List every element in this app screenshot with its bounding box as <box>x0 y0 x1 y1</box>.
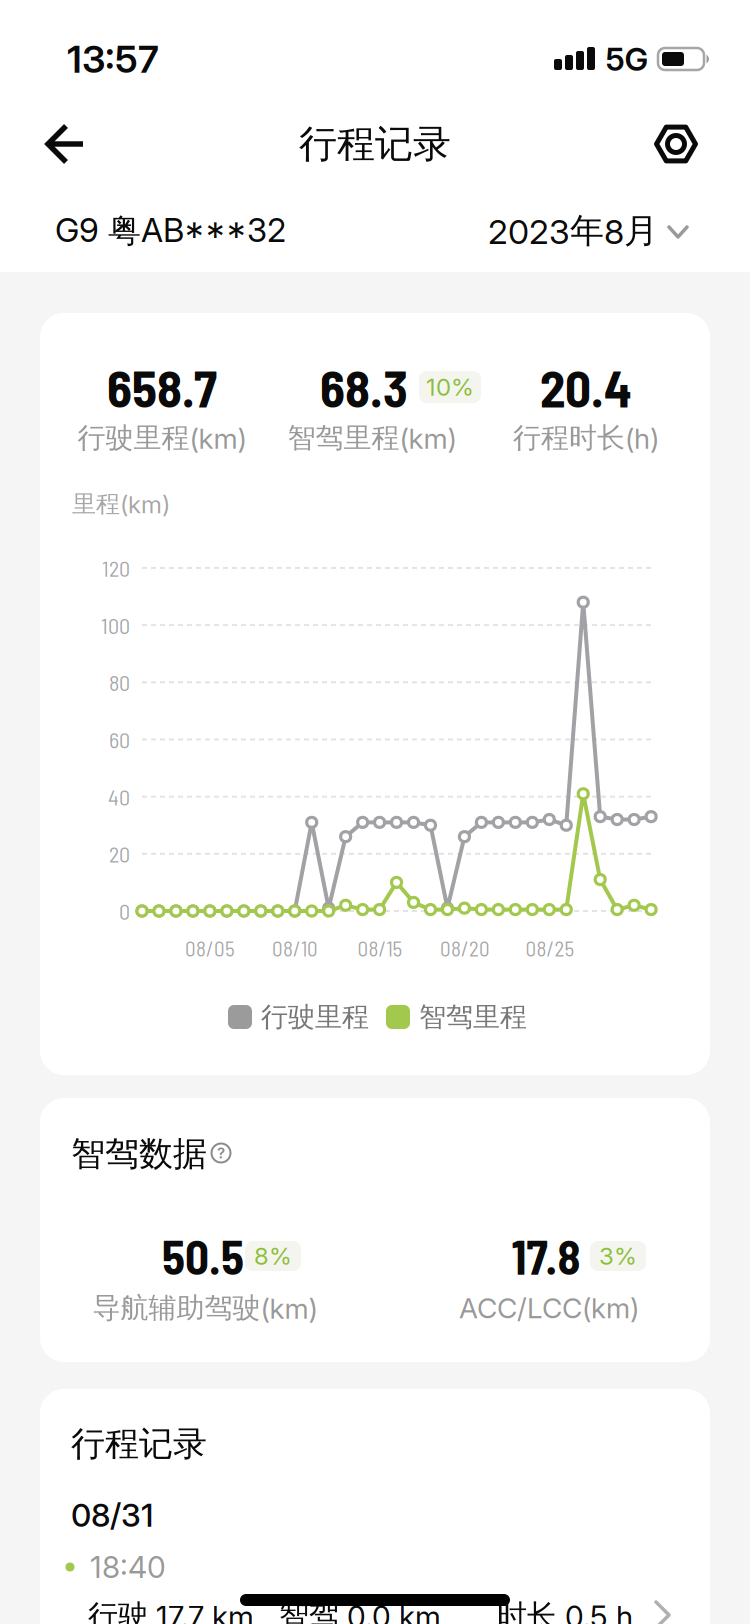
staticText: 20 <box>109 841 130 867</box>
staticText: G9 粤AB***32 <box>55 210 286 252</box>
staticText: 08/10 <box>272 935 318 961</box>
staticText: 68.3 <box>320 356 408 418</box>
staticText: 8% <box>254 1241 292 1270</box>
staticText: 智驾里程(km) <box>287 420 456 456</box>
staticText: 13:57 <box>67 36 159 82</box>
staticText: 行程记录 <box>71 1423 207 1465</box>
staticText: 2023年8月 <box>488 210 658 252</box>
staticText: 658.7 <box>107 356 217 418</box>
staticText: 20.4 <box>540 356 632 418</box>
staticText: 智驾数据 <box>71 1133 207 1175</box>
staticText: 导航辅助驾驶(km) <box>92 1290 317 1326</box>
staticText: 17.8 <box>511 1228 580 1284</box>
staticText: 60 <box>109 726 130 753</box>
staticText: 10% <box>426 372 474 401</box>
staticText: 50.5 <box>162 1228 244 1284</box>
staticText: 08/20 <box>440 935 490 961</box>
staticText: 08/25 <box>525 935 574 961</box>
staticText: 3% <box>599 1241 637 1270</box>
staticText: 5G <box>605 40 648 78</box>
staticText: 时长 0.5 h <box>497 1597 633 1624</box>
staticText: 120 <box>102 555 130 581</box>
staticText: 40 <box>108 783 130 810</box>
staticText: ? <box>217 1144 225 1162</box>
staticText: 行驶里程 <box>261 1000 369 1034</box>
staticText: 08/05 <box>185 935 235 961</box>
staticText: 0 <box>119 898 130 924</box>
staticText: 行程记录 <box>299 120 451 168</box>
staticText: 18:40 <box>90 1549 166 1585</box>
staticText: 08/31 <box>71 1496 154 1534</box>
staticText: 行驶 17.7 km <box>88 1597 254 1624</box>
staticText: 行程时长(h) <box>513 420 659 456</box>
staticText: 08/15 <box>357 935 402 961</box>
staticText: 智驾 0.0 km <box>279 1597 441 1624</box>
staticText: ACC/LCC(km) <box>459 1291 639 1325</box>
staticText: 100 <box>101 612 130 638</box>
staticText: 80 <box>109 669 130 695</box>
staticText: 行驶里程(km) <box>77 420 246 456</box>
staticText: 里程(km) <box>72 489 170 519</box>
staticText: 智驾里程 <box>419 1000 527 1034</box>
